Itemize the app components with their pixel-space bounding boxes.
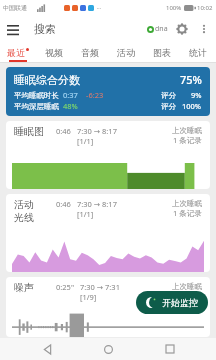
staticText: 睡眠图 <box>14 125 44 138</box>
staticText: 睡眠综合分数 <box>14 73 80 87</box>
button[interactable]: 视频 <box>36 42 72 62</box>
staticText: 10:02 <box>197 4 213 12</box>
staticText: 图表 <box>153 47 171 58</box>
staticText: 音频 <box>81 47 99 58</box>
button[interactable]: 开始监控 <box>136 291 208 314</box>
staticText: [1/1] <box>77 209 94 219</box>
button[interactable]: 活动 <box>6 194 210 272</box>
staticText: 上次睡眠 <box>172 199 202 208</box>
staticText: 噪声 <box>14 281 34 294</box>
staticText: 100% <box>166 4 182 12</box>
staticText: 48% <box>63 101 78 111</box>
staticText: 统计 <box>189 47 207 58</box>
staticText: 75% <box>180 72 202 87</box>
staticText: [1/1] <box>77 136 94 146</box>
staticText: [1/9] <box>80 292 97 302</box>
staticText: 0:25" <box>56 282 74 292</box>
button[interactable]: 统计 <box>180 42 216 62</box>
button[interactable]: 睡眠图 <box>6 121 210 189</box>
staticText: 1 条记录 <box>173 208 202 218</box>
staticText: 评分 <box>161 102 176 111</box>
staticText: 评分 <box>161 91 176 100</box>
staticText: 活动 <box>14 198 34 211</box>
button[interactable]: dna <box>145 24 170 34</box>
staticText: 0:37 <box>63 90 78 100</box>
staticText: 100% <box>182 101 202 111</box>
staticText: 7:30 → 8:17 <box>77 199 117 209</box>
staticText: 上次睡眠 <box>172 282 202 291</box>
staticText: 0:46 <box>56 126 71 136</box>
staticText: 最近 <box>7 47 25 58</box>
button[interactable]: 活动 <box>108 42 144 62</box>
staticText: dna <box>155 24 168 34</box>
button[interactable]: Recents <box>155 338 185 360</box>
button[interactable]: More options <box>194 19 214 39</box>
button[interactable]: 睡眠综合分数 <box>6 67 210 116</box>
staticText: 平均睡眠时长 <box>14 91 59 100</box>
staticText: 1 条记录 <box>173 135 202 145</box>
button[interactable]: 搜索 <box>34 22 56 36</box>
staticText: 1 条记录 <box>173 291 202 301</box>
button[interactable]: 图表 <box>144 42 180 62</box>
staticText: 7:30 → 7:31 <box>80 282 120 292</box>
staticText: ··· <box>97 5 102 12</box>
staticText: 活动 <box>117 47 135 58</box>
staticText: -6:23 <box>86 90 104 100</box>
staticText: 视频 <box>45 47 63 58</box>
button[interactable]: Menu <box>0 16 26 42</box>
button[interactable]: Home <box>93 338 123 360</box>
button[interactable]: Settings <box>170 17 194 41</box>
button[interactable]: Back <box>32 338 62 360</box>
staticText: 平均深层睡眠 <box>14 102 59 111</box>
staticText: 中国联通 <box>3 4 27 12</box>
staticText: 9% <box>191 90 202 100</box>
staticText: 上次睡眠 <box>172 126 202 135</box>
staticText: 开始监控 <box>162 297 198 308</box>
staticText: 光线 <box>14 211 34 224</box>
button[interactable]: 最近 <box>0 42 36 62</box>
button[interactable]: 噪声 <box>6 277 210 337</box>
staticText: 7:30 → 8:17 <box>77 126 117 136</box>
staticText: 0:46 <box>56 199 71 209</box>
button[interactable]: 音频 <box>72 42 108 62</box>
